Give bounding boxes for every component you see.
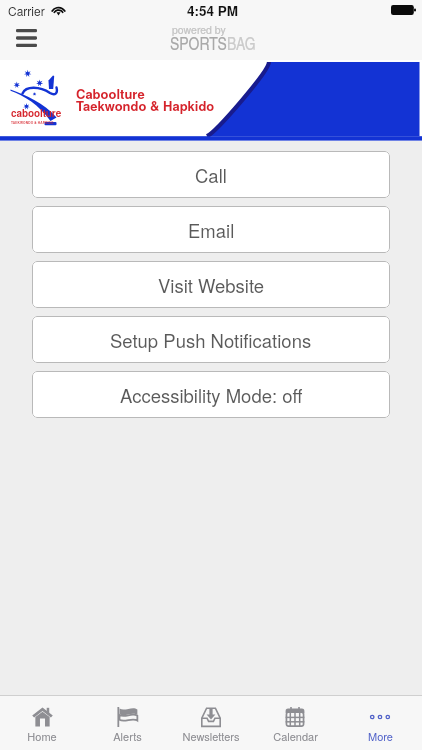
staticText: Carrier	[8, 2, 45, 19]
button[interactable]: Email	[32, 206, 390, 253]
staticText: Home	[27, 728, 57, 744]
staticText: Caboolture Taekwondo & Hapkido	[76, 84, 215, 115]
button[interactable]: Newsletters	[169, 696, 253, 750]
button[interactable]: Visit Website	[32, 261, 390, 308]
staticText: Visit Website	[158, 272, 265, 298]
button[interactable]: Setup Push Notifications	[32, 316, 390, 363]
staticText: Alerts	[113, 728, 142, 744]
staticText: 4:54 PM	[187, 1, 239, 20]
staticText: SPORTS	[170, 31, 227, 54]
staticText: BAG	[227, 31, 256, 54]
staticText: Newsletters	[182, 728, 240, 744]
button[interactable]: Accessibility Mode: off	[32, 371, 390, 418]
staticText: Setup Push Notifications	[110, 327, 312, 353]
staticText: Calendar	[273, 728, 318, 744]
staticText: caboolture	[11, 106, 62, 120]
staticText: More	[368, 728, 393, 744]
staticText: Accessibility Mode: off	[120, 382, 303, 408]
button[interactable]: More	[338, 696, 422, 750]
button[interactable]: Alerts	[85, 696, 169, 750]
button[interactable]: Home	[0, 696, 84, 750]
staticText: Email	[188, 217, 235, 243]
staticText: TAEKWONDO & HAPKIDO	[11, 120, 54, 125]
button[interactable]: Call	[32, 151, 390, 198]
staticText: Call	[195, 162, 227, 188]
staticText: powered by	[172, 22, 226, 37]
button[interactable]: Calendar	[253, 696, 337, 750]
button[interactable]: Open navigation menu	[6, 20, 46, 60]
